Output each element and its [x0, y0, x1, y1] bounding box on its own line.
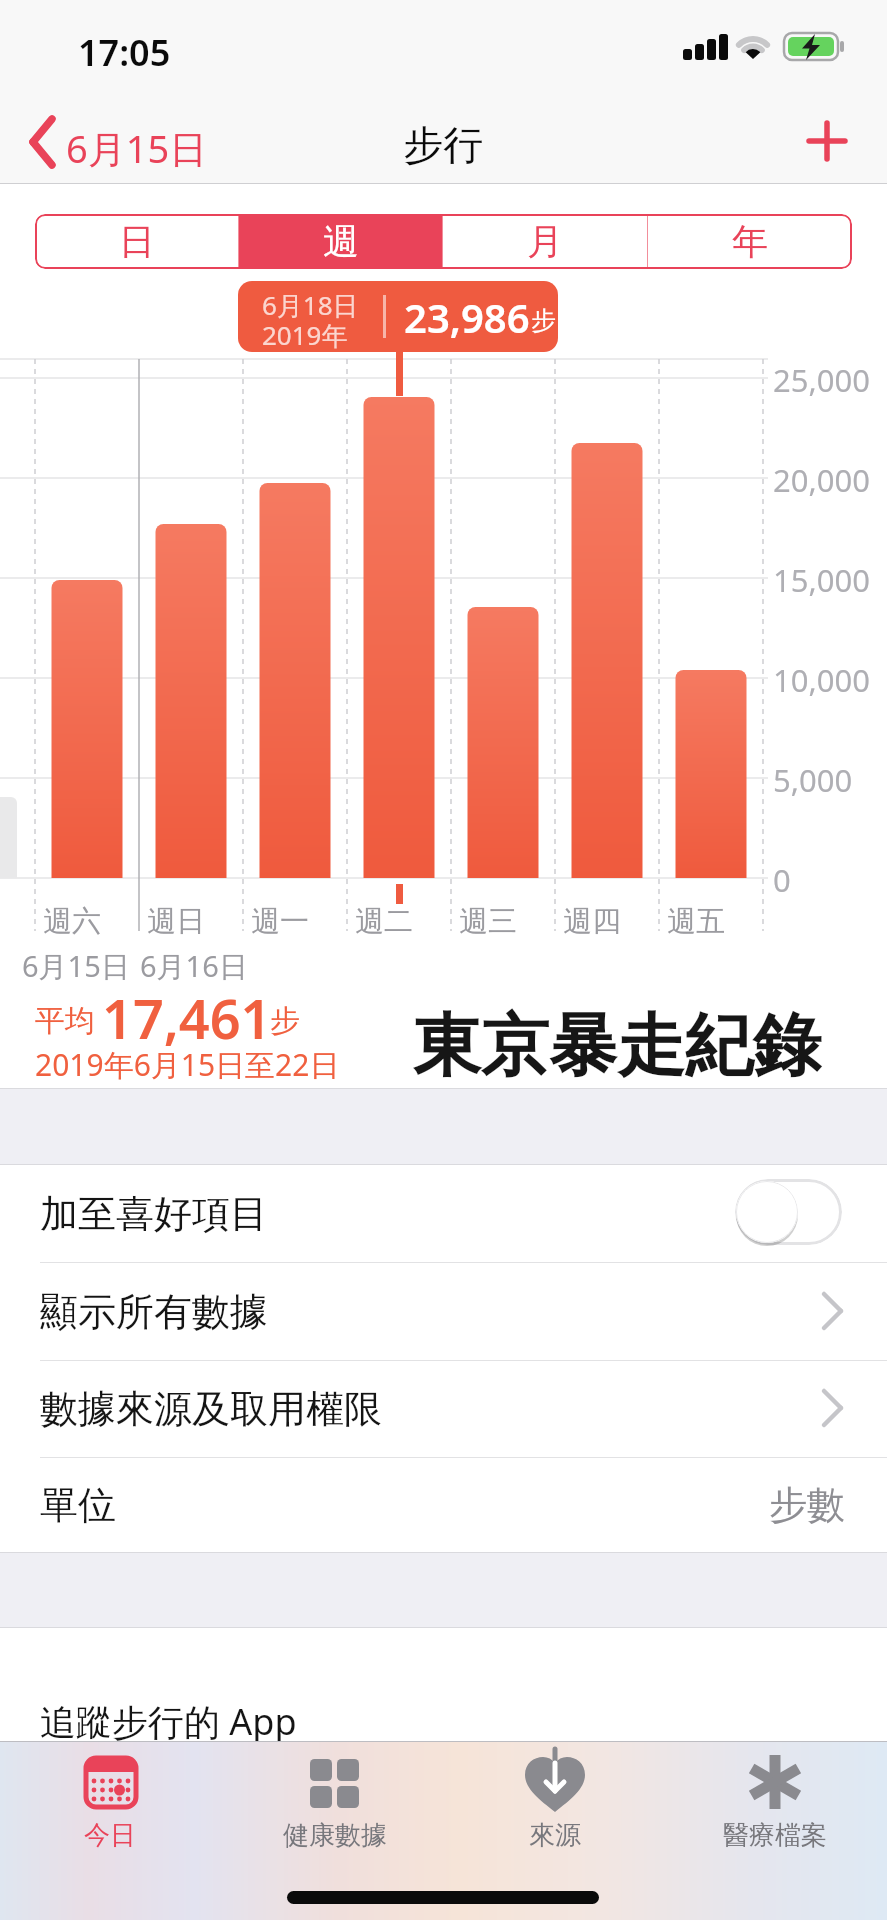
staticText: 17:05	[78, 28, 171, 77]
staticText: 0	[773, 859, 791, 901]
button[interactable]	[20, 105, 210, 175]
button[interactable]: 加至喜好項目	[0, 1165, 887, 1262]
staticText: 東京暴走紀錄	[413, 1004, 821, 1090]
staticText: 6月18日	[262, 287, 359, 323]
staticText: 6月15日	[22, 946, 130, 986]
staticText: 單位	[40, 1481, 116, 1529]
staticText: 2019年	[262, 317, 348, 352]
staticText: 週一	[251, 903, 309, 940]
button[interactable]	[800, 110, 860, 170]
staticText: 6月16日	[140, 946, 248, 986]
staticText: 2019年6月15日至22日	[35, 1044, 340, 1085]
staticText: 15,000	[773, 559, 870, 601]
staticText: 步行	[0, 120, 887, 170]
staticText: 週日	[147, 903, 205, 940]
staticText: 10,000	[773, 659, 870, 701]
button[interactable]: 數據來源及取用權限	[0, 1361, 887, 1457]
staticText: 來源	[475, 1819, 635, 1852]
staticText: 5,000	[773, 759, 853, 801]
staticText: 醫療檔案	[695, 1819, 855, 1852]
staticText: 25,000	[773, 359, 870, 401]
staticText: 日	[119, 219, 155, 264]
staticText: 週六	[43, 903, 101, 940]
staticText: 週四	[563, 903, 621, 940]
staticText: 加至喜好項目	[40, 1190, 268, 1238]
button[interactable]: 單位	[0, 1458, 887, 1552]
staticText: 週五	[667, 903, 725, 940]
staticText: 週	[323, 219, 359, 264]
staticText: 步	[270, 1002, 300, 1040]
staticText: 今日	[30, 1819, 190, 1852]
staticText: 6月15日	[66, 122, 208, 174]
staticText: 追蹤步行的 App	[40, 1697, 297, 1746]
staticText: 顯示所有數據	[40, 1288, 268, 1336]
staticText: 平均	[35, 1002, 95, 1040]
staticText: 健康數據	[255, 1819, 415, 1852]
button[interactable]	[695, 1748, 855, 1868]
staticText: 步	[531, 305, 556, 336]
button[interactable]: 月	[443, 214, 647, 269]
staticText: 週三	[459, 903, 517, 940]
staticText: 步數	[769, 1481, 845, 1529]
button[interactable]	[30, 1748, 190, 1868]
button[interactable]: 週	[239, 214, 442, 269]
staticText: 20,000	[773, 459, 870, 501]
button[interactable]: 年	[648, 214, 852, 269]
staticText: 年	[732, 219, 768, 264]
staticText: 數據來源及取用權限	[40, 1385, 382, 1433]
button[interactable]: 顯示所有數據	[0, 1263, 887, 1360]
staticText: 月	[527, 219, 563, 264]
staticText: 17,461	[102, 981, 272, 1055]
button[interactable]	[255, 1748, 415, 1868]
button[interactable]	[475, 1748, 635, 1868]
staticText: 23,986	[404, 290, 530, 344]
button[interactable]: 日	[35, 214, 238, 269]
staticText: 週二	[355, 903, 413, 940]
